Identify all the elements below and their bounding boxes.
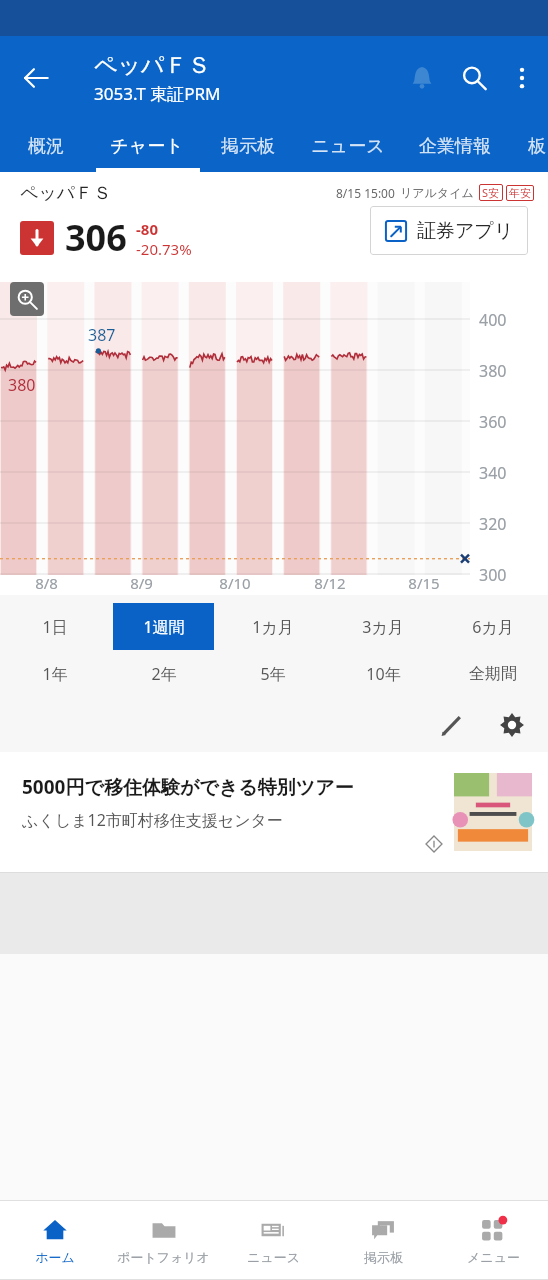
- staticText: 306: [65, 213, 127, 262]
- button[interactable]: 10年: [328, 650, 438, 697]
- staticText: 1年: [42, 663, 68, 685]
- staticText: 340: [479, 462, 507, 484]
- staticText: 3カ月: [362, 616, 404, 638]
- staticText: 5年: [260, 663, 286, 685]
- staticText: ポートフォリオ: [117, 1249, 210, 1265]
- button[interactable]: Zoom chart: [10, 282, 44, 316]
- staticText: 板: [528, 135, 546, 158]
- staticText: 400: [479, 309, 507, 331]
- staticText: 1週間: [143, 616, 185, 638]
- staticText: 10年: [366, 663, 401, 685]
- staticText: 8/10: [219, 573, 251, 593]
- staticText: 8/9: [130, 573, 153, 593]
- staticText: S安: [482, 185, 500, 200]
- other: Ad info: [424, 834, 444, 854]
- staticText: 3053.T 東証PRM: [94, 82, 221, 105]
- button[interactable]: 1カ月: [218, 603, 328, 650]
- button[interactable]: Search: [448, 52, 500, 104]
- button[interactable]: 5年: [218, 650, 328, 697]
- staticText: 8/15 15:00: [336, 185, 395, 201]
- staticText: チャート: [110, 135, 184, 158]
- button[interactable]: 企業情報: [409, 120, 501, 172]
- button[interactable]: Back: [8, 50, 64, 106]
- staticText: 企業情報: [419, 135, 491, 158]
- staticText: 5000円で移住体験ができる特別ツアー: [22, 774, 354, 800]
- staticText: ニュース: [247, 1249, 300, 1265]
- staticText: 2年: [151, 663, 177, 685]
- staticText: 8/8: [35, 573, 58, 593]
- button[interactable]: 3カ月: [328, 603, 438, 650]
- staticText: 320: [479, 513, 507, 535]
- staticText: 1カ月: [252, 616, 294, 638]
- button[interactable]: 証券アプリ: [370, 206, 528, 255]
- staticText: 387: [88, 324, 116, 346]
- staticText: 8/15: [408, 573, 440, 593]
- staticText: 300: [479, 564, 507, 586]
- button[interactable]: ホーム: [0, 1201, 109, 1279]
- staticText: メニュー: [467, 1249, 520, 1265]
- staticText: リアルタイム: [400, 185, 474, 200]
- staticText: -80: [136, 219, 158, 239]
- button[interactable]: チャート: [101, 120, 193, 172]
- button[interactable]: 概況: [19, 120, 73, 172]
- staticText: 1日: [42, 616, 68, 638]
- button[interactable]: 1年: [0, 650, 109, 697]
- button[interactable]: More options: [500, 56, 544, 100]
- button[interactable]: Notifications: [396, 52, 448, 104]
- button[interactable]: ニュース: [302, 120, 394, 172]
- staticText: 全期間: [469, 664, 517, 684]
- staticText: 概況: [28, 135, 64, 158]
- staticText: 8/12: [314, 573, 346, 593]
- staticText: ペッパＦＳ: [94, 51, 211, 80]
- button[interactable]: 5000円で移住体験ができる特別ツアー: [0, 752, 548, 872]
- staticText: 380: [8, 374, 36, 396]
- staticText: 6カ月: [472, 616, 514, 638]
- staticText: -20.73%: [136, 239, 192, 259]
- staticText: ふくしま12市町村移住支援センター: [22, 809, 283, 831]
- button[interactable]: Edit chart: [428, 701, 476, 749]
- button[interactable]: メニュー: [438, 1201, 548, 1279]
- staticText: 掲示板: [221, 135, 275, 158]
- button[interactable]: 1週間: [113, 603, 214, 650]
- button[interactable]: Chart settings: [488, 701, 536, 749]
- button[interactable]: 板: [519, 120, 548, 172]
- staticText: ニュース: [311, 135, 385, 158]
- button[interactable]: 1日: [0, 603, 109, 650]
- staticText: ホーム: [35, 1249, 75, 1265]
- button[interactable]: 掲示板: [328, 1201, 438, 1279]
- button[interactable]: 掲示板: [211, 120, 284, 172]
- staticText: 掲示板: [364, 1249, 403, 1265]
- staticText: 証券アプリ: [417, 219, 514, 243]
- staticText: 年安: [509, 186, 531, 200]
- button[interactable]: ニュース: [218, 1201, 328, 1279]
- button[interactable]: 全期間: [438, 650, 548, 697]
- button[interactable]: ポートフォリオ: [109, 1201, 218, 1279]
- button[interactable]: 2年: [109, 650, 218, 697]
- staticText: 360: [479, 411, 507, 433]
- button[interactable]: 6カ月: [438, 603, 548, 650]
- staticText: 380: [479, 360, 507, 382]
- staticText: ペッパＦＳ: [20, 182, 112, 205]
